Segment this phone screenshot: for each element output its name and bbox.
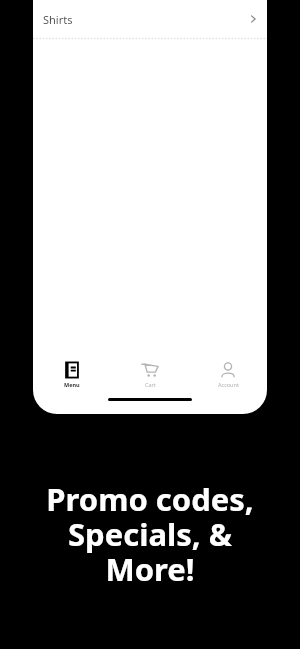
- button[interactable]: Menu: [33, 359, 111, 390]
- staticText: Cart: [145, 381, 156, 388]
- staticText: Promo codes, Specials, & More!: [46, 478, 254, 591]
- other: Account: [219, 361, 237, 379]
- button[interactable]: Shirts: [33, 0, 267, 38]
- staticText: Menu: [64, 381, 80, 388]
- other: Menu: [63, 361, 81, 379]
- button[interactable]: Cart: [111, 359, 189, 390]
- other: Cart: [141, 361, 159, 379]
- staticText: Shirts: [43, 12, 73, 27]
- staticText: Account: [218, 381, 239, 388]
- button[interactable]: Account: [189, 359, 267, 390]
